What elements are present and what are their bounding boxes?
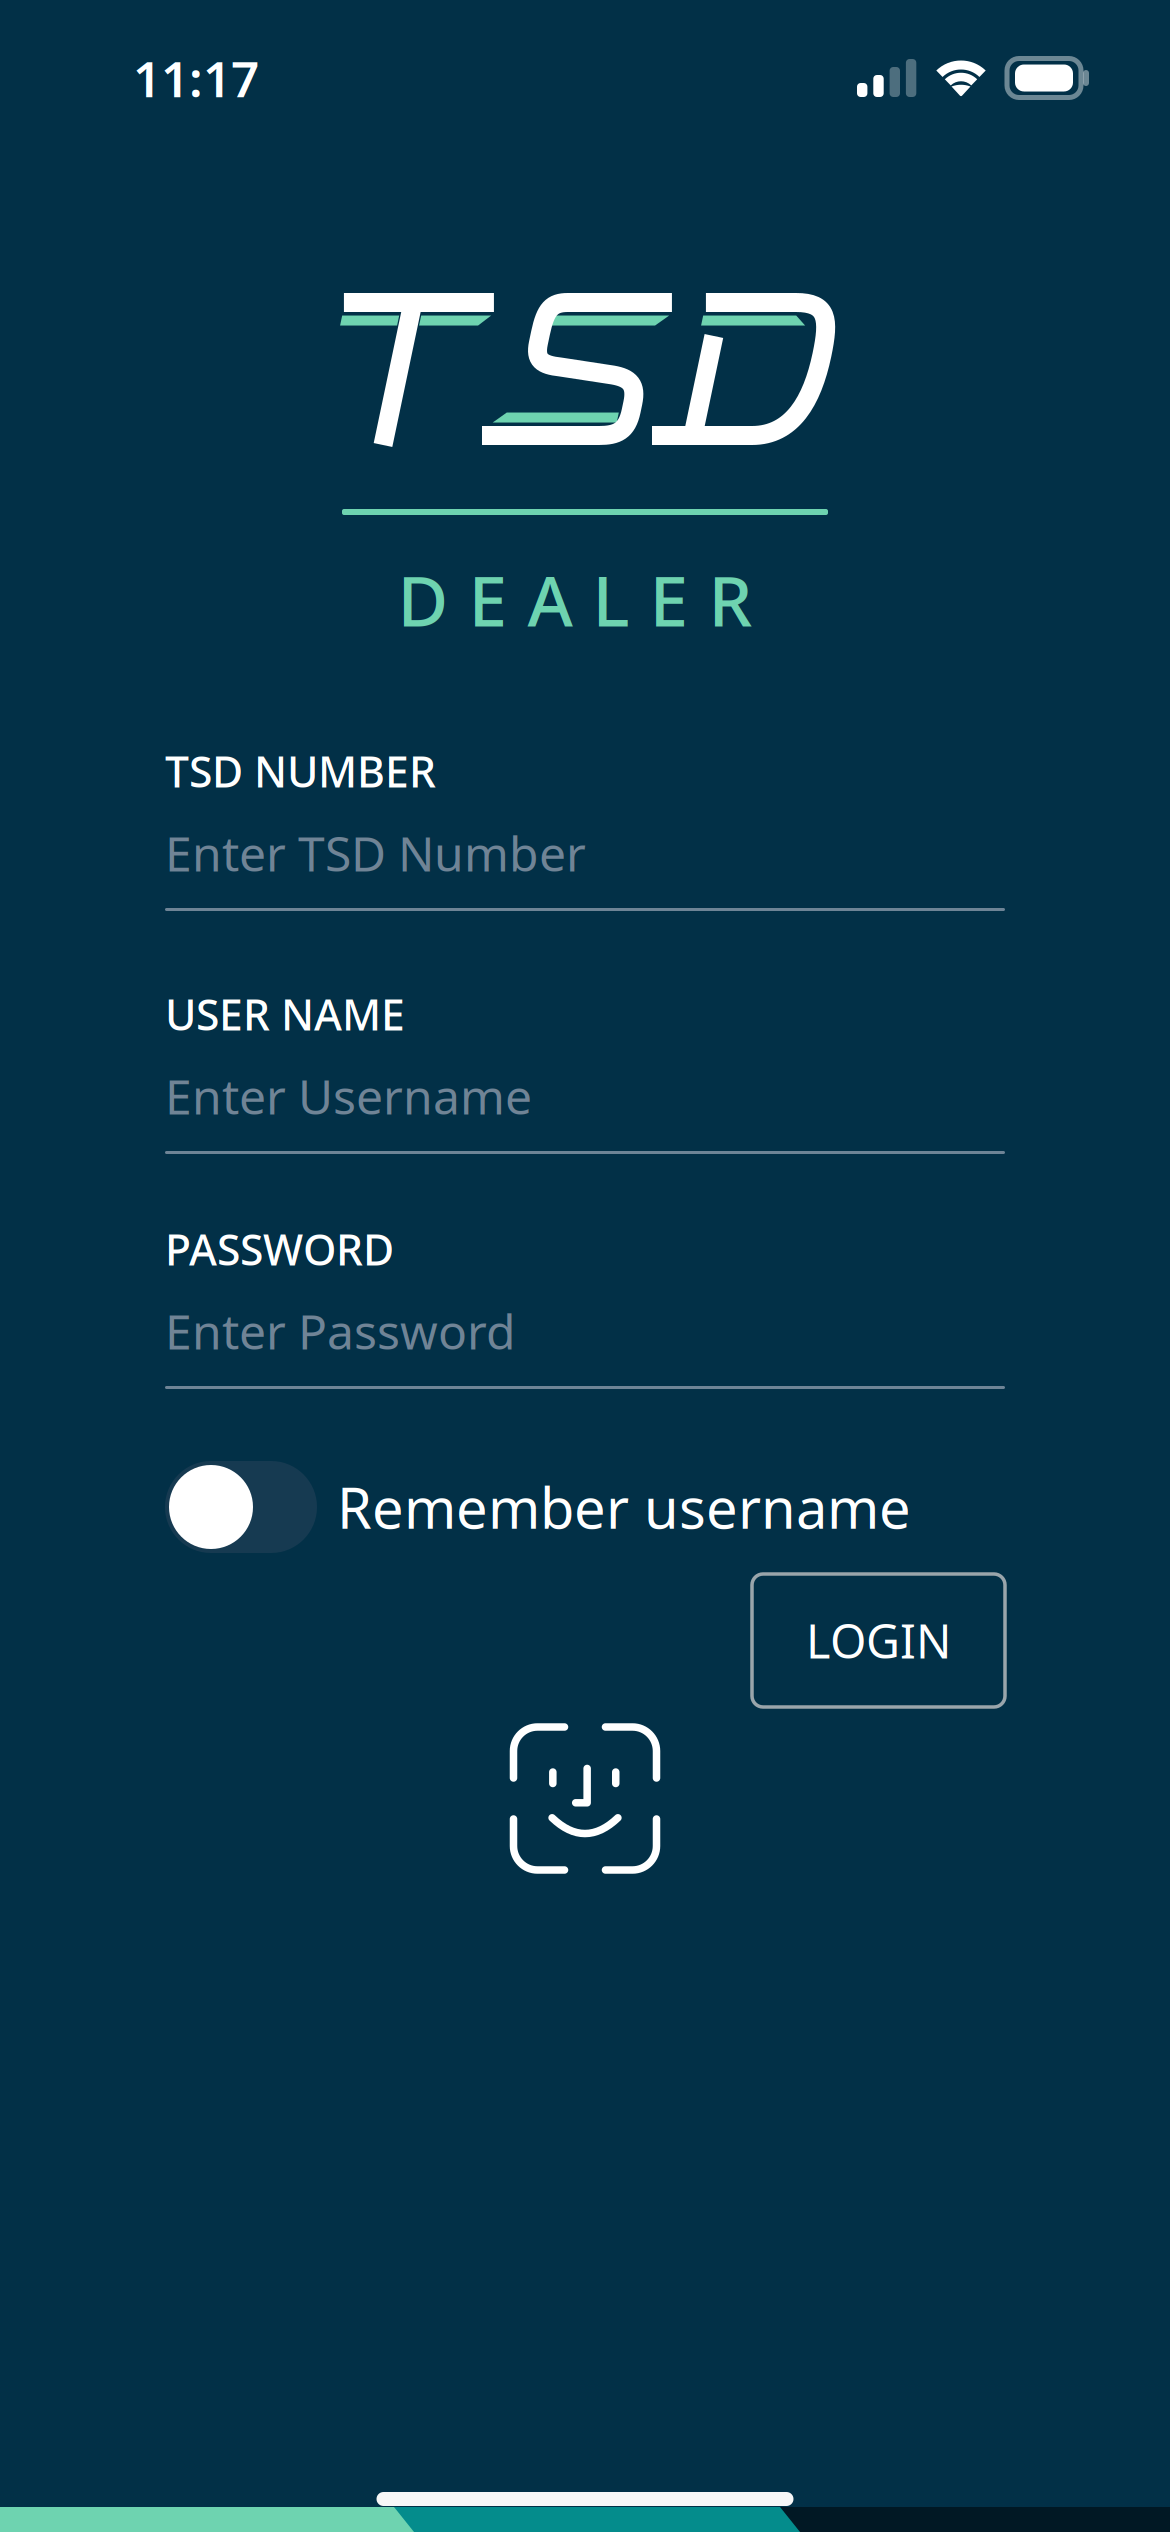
staticText: DEALER bbox=[397, 553, 752, 646]
staticText: Enter TSD Number bbox=[165, 821, 586, 885]
staticText: Remember username bbox=[337, 1470, 911, 1544]
button[interactable]: Remember username bbox=[165, 1461, 1005, 1553]
staticText: LOGIN bbox=[806, 1609, 951, 1671]
staticText: USER NAME bbox=[165, 986, 405, 1042]
staticText: PASSWORD bbox=[165, 1221, 394, 1277]
staticText: TSD NUMBER bbox=[165, 743, 436, 799]
staticText: Enter Username bbox=[165, 1064, 532, 1128]
button[interactable]: LOGIN bbox=[752, 1574, 1005, 1707]
staticText: 11:17 bbox=[133, 45, 259, 111]
button[interactable]: Sign in with Face ID bbox=[499, 1713, 670, 1884]
staticText: Enter Password bbox=[165, 1299, 516, 1363]
